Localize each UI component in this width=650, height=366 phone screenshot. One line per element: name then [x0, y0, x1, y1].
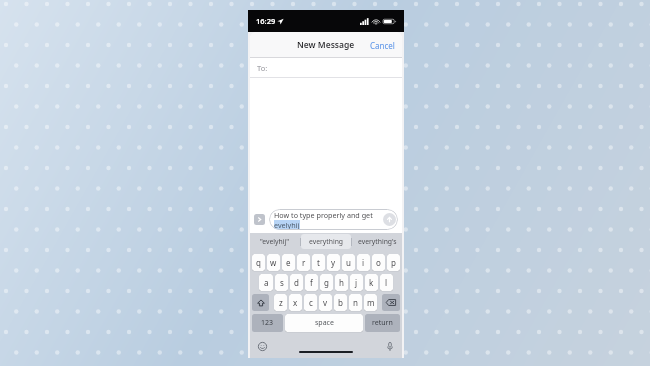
staticText: everything's [358, 237, 397, 246]
button[interactable]: k [365, 274, 378, 291]
staticText: r [302, 257, 306, 268]
button[interactable]: c [304, 294, 317, 311]
button[interactable]: New Message [250, 32, 402, 58]
staticText: s [280, 277, 284, 288]
staticText: Cancel [370, 40, 395, 51]
button[interactable]: n [349, 294, 362, 311]
staticText: To: [257, 63, 268, 73]
button[interactable]: space [285, 314, 363, 332]
staticText: z [279, 297, 283, 308]
button[interactable]: d [290, 274, 303, 291]
staticText: 16:29 [256, 16, 276, 26]
button[interactable]: everything [301, 234, 351, 249]
button[interactable]: return [365, 314, 400, 332]
button[interactable]: Show apps [254, 214, 265, 225]
staticText: New Message [297, 39, 355, 51]
staticText: How to type properly and get [274, 210, 373, 220]
button[interactable]: Emoji [256, 340, 268, 352]
staticText: g [324, 277, 329, 288]
staticText: l [385, 277, 388, 288]
button[interactable]: 123 [252, 314, 283, 332]
button[interactable]: "evelyhij" [250, 233, 300, 250]
staticText: n [353, 297, 358, 308]
button[interactable]: w [267, 254, 280, 271]
button[interactable]: t [312, 254, 325, 271]
staticText: q [256, 257, 261, 268]
button[interactable]: g [320, 274, 333, 291]
staticText: space [315, 318, 334, 328]
staticText: x [293, 297, 298, 308]
button[interactable]: v [319, 294, 332, 311]
staticText: u [346, 257, 351, 268]
button[interactable]: q [252, 254, 265, 271]
button[interactable]: x [289, 294, 302, 311]
staticText: m [367, 297, 375, 308]
button[interactable]: To: [250, 58, 402, 78]
staticText: return [372, 318, 393, 328]
button[interactable]: Shift [252, 294, 269, 311]
staticText: j [355, 277, 358, 288]
staticText: t [317, 257, 320, 268]
button[interactable]: Dictation [384, 340, 396, 352]
staticText: f [310, 277, 313, 288]
staticText: b [338, 297, 343, 308]
staticText: o [376, 257, 381, 268]
staticText: y [331, 257, 336, 268]
button[interactable]: b [334, 294, 347, 311]
staticText: evelyhij [274, 220, 300, 230]
staticText: w [270, 257, 277, 268]
button[interactable]: e [282, 254, 295, 271]
staticText: v [323, 297, 328, 308]
staticText: i [362, 257, 365, 268]
button[interactable]: Backspace [382, 294, 400, 311]
button[interactable]: y [327, 254, 340, 271]
button[interactable]: a [259, 274, 273, 291]
staticText: d [294, 277, 299, 288]
button[interactable]: o [372, 254, 385, 271]
button[interactable]: m [364, 294, 377, 311]
staticText: k [369, 277, 374, 288]
button[interactable]: h [335, 274, 348, 291]
button[interactable]: r [297, 254, 310, 271]
button[interactable]: Cancel [368, 37, 397, 54]
button[interactable]: How to type properly and get [269, 209, 398, 230]
staticText: "evelyhij" [260, 237, 290, 246]
staticText: c [309, 297, 313, 308]
button[interactable]: f [305, 274, 318, 291]
staticText: everything [309, 237, 344, 246]
button[interactable]: j [350, 274, 363, 291]
button[interactable]: z [274, 294, 287, 311]
button[interactable]: p [387, 254, 400, 271]
button[interactable]: i [357, 254, 370, 271]
button[interactable]: everything's [352, 233, 402, 250]
staticText: p [391, 257, 396, 268]
button[interactable]: s [275, 274, 288, 291]
button[interactable]: u [342, 254, 355, 271]
staticText: 123 [261, 318, 274, 328]
button[interactable]: Send [383, 213, 396, 226]
staticText: h [339, 277, 344, 288]
staticText: e [286, 257, 291, 268]
staticText: a [264, 277, 269, 288]
button[interactable]: l [380, 274, 393, 291]
